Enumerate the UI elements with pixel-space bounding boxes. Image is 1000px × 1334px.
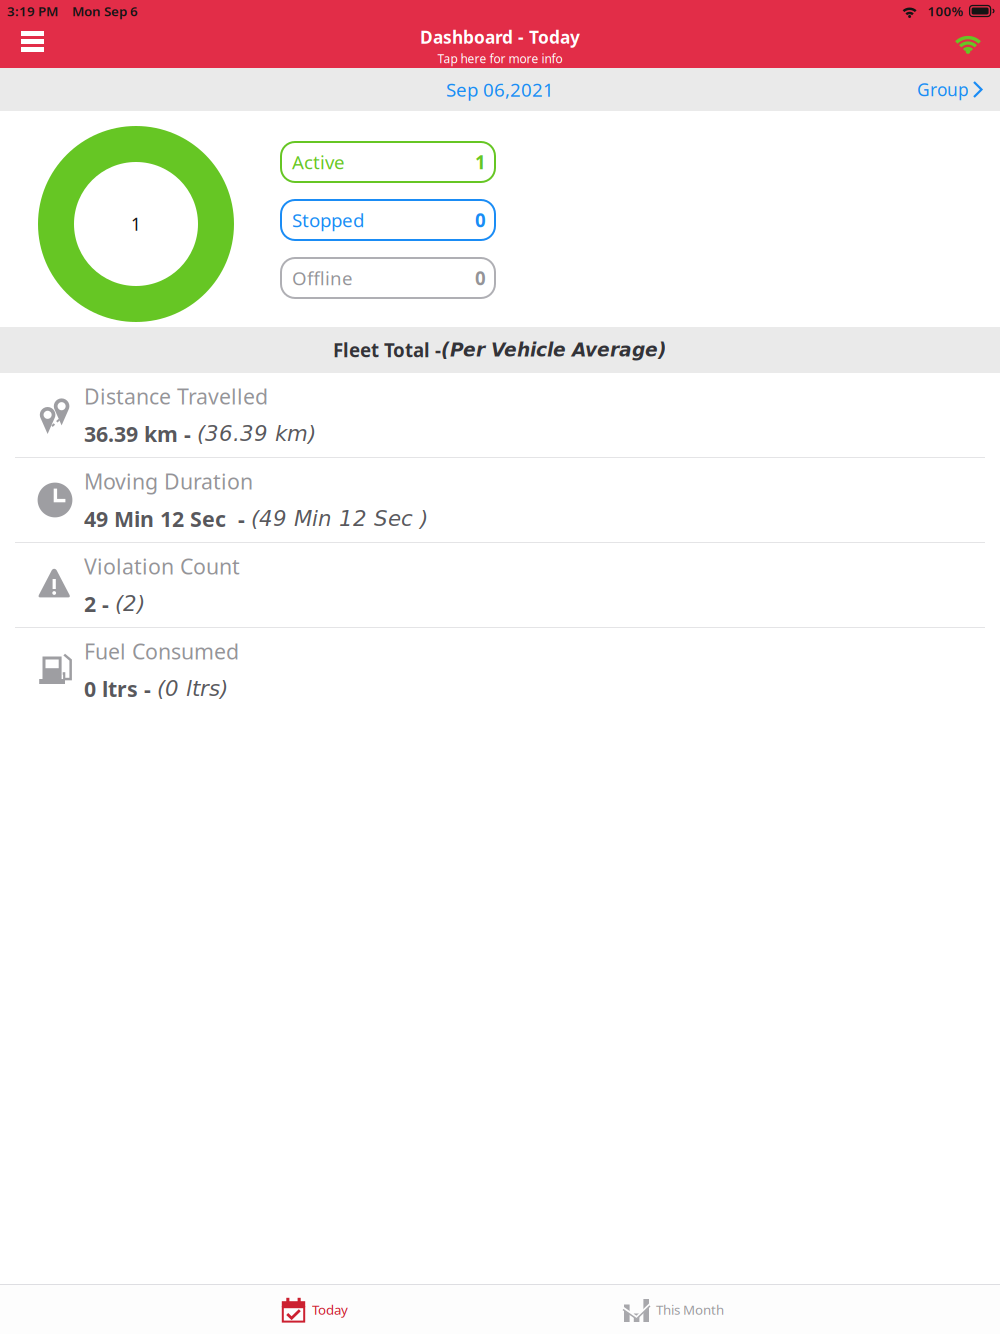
staticText: Offline — [292, 266, 353, 290]
staticText: 36.39 km - — [84, 419, 191, 448]
button[interactable]: Moving Duration — [0, 458, 1000, 542]
staticText: (2) — [115, 591, 145, 616]
staticText: Fleet Total - — [333, 338, 441, 362]
button[interactable]: This Month — [609, 1285, 738, 1334]
button[interactable]: Distance Travelled — [0, 373, 1000, 457]
staticText: (36.39 km) — [197, 421, 316, 446]
staticText: 0 — [475, 208, 486, 232]
button[interactable]: Active — [281, 142, 495, 182]
button[interactable]: Today — [267, 1285, 362, 1334]
button[interactable]: Fuel Consumed — [0, 628, 1000, 712]
button[interactable]: Dashboard - Today — [410, 20, 590, 69]
staticText: Sep 06,2021 — [446, 77, 554, 102]
staticText: Distance Travelled — [84, 382, 268, 410]
staticText: (49 Min 12 Sec ) — [251, 506, 428, 531]
staticText: 100% — [928, 2, 964, 20]
staticText: 49 Min 12 Sec - — [84, 504, 245, 533]
staticText: 1 — [131, 212, 141, 235]
staticText: 3:19 PM — [7, 2, 58, 20]
button[interactable]: Stopped — [281, 200, 495, 240]
staticText: 1 — [475, 150, 486, 174]
staticText: Mon Sep 6 — [72, 2, 138, 20]
button[interactable]: Menu — [0, 19, 66, 70]
button[interactable]: Violation Count — [0, 543, 1000, 627]
staticText: 0 — [475, 266, 486, 290]
staticText: 2 - — [84, 589, 109, 618]
button[interactable]: Offline — [281, 258, 495, 298]
button[interactable]: Sep 06,2021 — [426, 70, 574, 109]
staticText: Dashboard - Today — [420, 25, 580, 48]
staticText: Moving Duration — [84, 467, 253, 495]
staticText: Violation Count — [84, 552, 240, 580]
button[interactable]: Connection status — [934, 18, 1000, 72]
staticText: Group — [917, 78, 969, 101]
staticText: Fuel Consumed — [84, 637, 239, 665]
staticText: (Per Vehicle Average) — [441, 339, 667, 361]
staticText: Tap here for more info — [437, 50, 562, 66]
staticText: (0 ltrs) — [157, 676, 228, 701]
staticText: Today — [312, 1301, 348, 1318]
staticText: This Month — [656, 1301, 724, 1318]
staticText: 0 ltrs - — [84, 674, 151, 703]
button[interactable]: Group — [903, 72, 1000, 107]
staticText: Active — [292, 150, 345, 174]
staticText: Stopped — [292, 208, 364, 232]
